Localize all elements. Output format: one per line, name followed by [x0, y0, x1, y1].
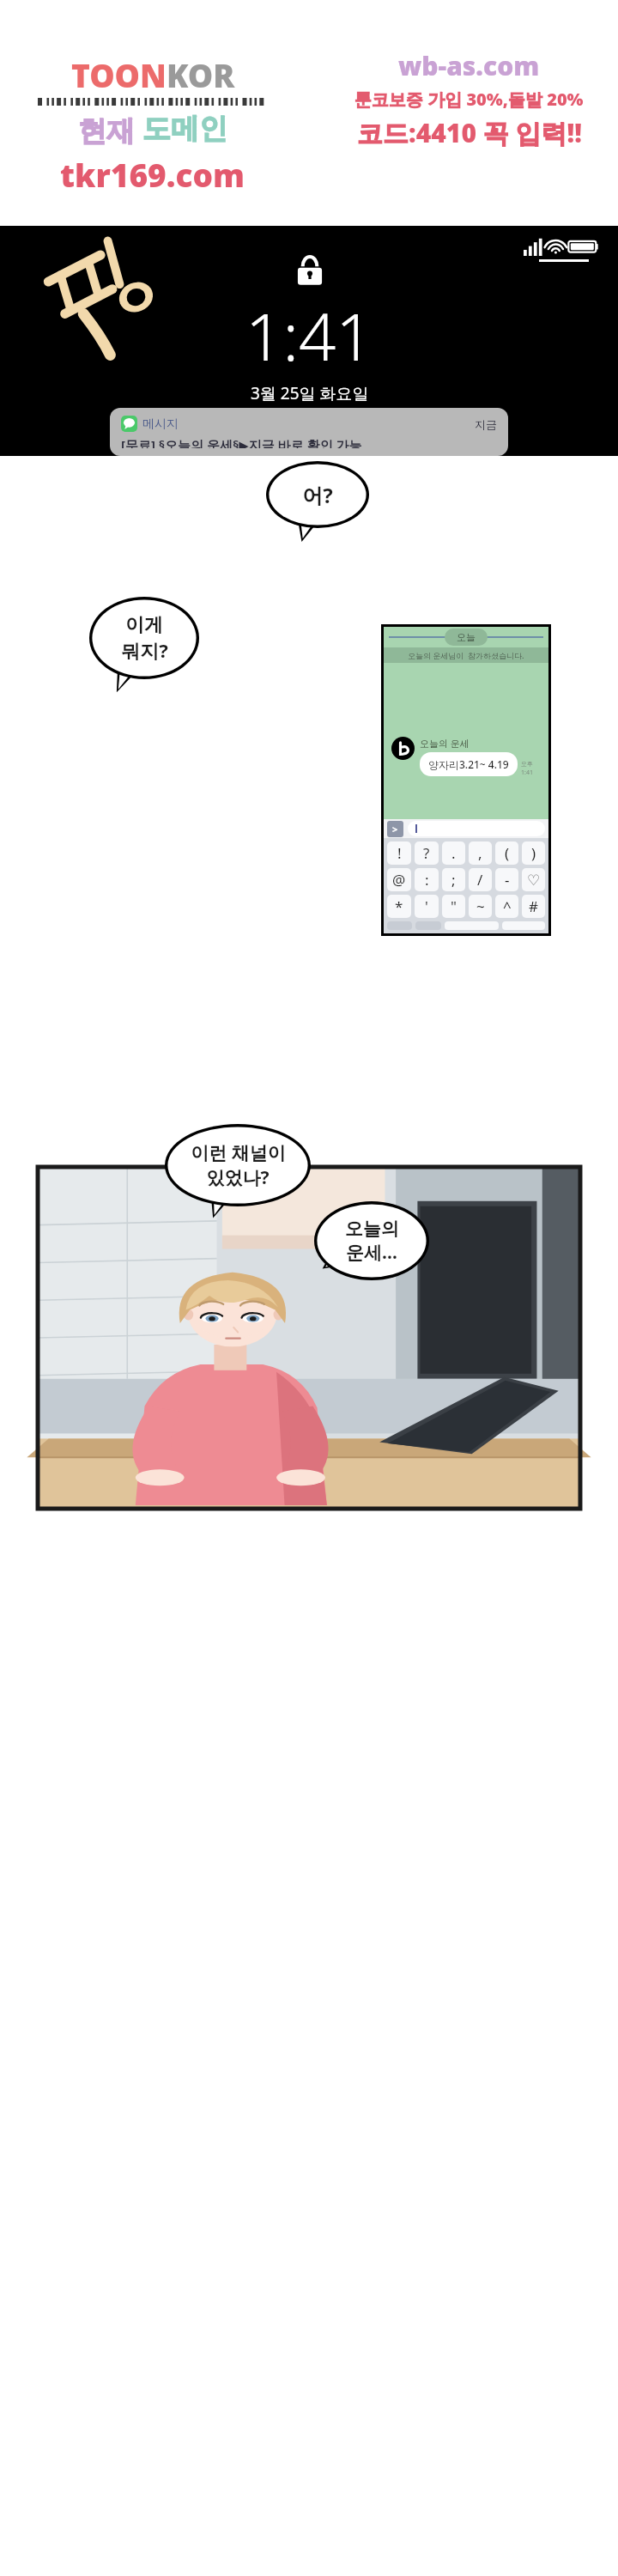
- staticText: ~: [476, 896, 485, 916]
- staticText: 툰코보증 가입 30%,돌발 20%: [354, 88, 584, 111]
- staticText: ^: [503, 896, 512, 916]
- staticText: ': [425, 896, 428, 916]
- staticText: 3월 25일 화요일: [251, 382, 369, 404]
- staticText: 양자리3.21~ 4.19: [428, 757, 509, 771]
- button[interactable]: @: [387, 868, 411, 891]
- staticText: 이게: [125, 613, 163, 637]
- staticText: 오늘의 운세: [420, 737, 470, 750]
- staticText: 뭐지?: [121, 637, 168, 663]
- staticText: 코드:4410 꼭 입력!!: [357, 115, 582, 150]
- button[interactable]: Enter: [502, 921, 545, 930]
- staticText: ?: [423, 843, 430, 863]
- button[interactable]: 메시지: [110, 408, 508, 456]
- staticText: 현재: [78, 111, 142, 149]
- staticText: wb-as.com: [398, 48, 540, 83]
- button[interactable]: ^: [495, 895, 518, 918]
- button[interactable]: ': [415, 895, 439, 918]
- staticText: ,: [478, 843, 482, 863]
- staticText: 오늘: [457, 631, 476, 643]
- staticText: TOON: [71, 53, 167, 96]
- button[interactable]: Space: [445, 921, 499, 930]
- button[interactable]: Symbols: [387, 921, 412, 930]
- button[interactable]: /: [469, 868, 492, 891]
- button[interactable]: *: [387, 895, 411, 918]
- staticText: ): [531, 843, 536, 863]
- staticText: -: [505, 870, 510, 890]
- staticText: ;: [451, 870, 456, 890]
- staticText: 있었나?: [206, 1165, 270, 1190]
- button[interactable]: ): [522, 841, 545, 865]
- staticText: 이런 채널이: [191, 1140, 286, 1165]
- button[interactable]: #: [522, 895, 545, 918]
- staticText: *: [395, 896, 403, 916]
- button[interactable]: ,: [469, 841, 492, 865]
- staticText: 1:41: [245, 291, 373, 380]
- staticText: /: [477, 870, 483, 890]
- staticText: 오늘의: [345, 1218, 399, 1240]
- staticText: ♡: [527, 872, 541, 889]
- staticText: (: [505, 843, 510, 863]
- button[interactable]: (: [495, 841, 518, 865]
- button[interactable]: Language: [415, 921, 441, 930]
- staticText: .: [451, 843, 456, 863]
- button[interactable]: ♡: [522, 868, 545, 891]
- button[interactable]: ~: [469, 895, 492, 918]
- button[interactable]: .: [442, 841, 465, 865]
- staticText: [무료] §오늘의 운세§▶지금 바로 확인 가능: [121, 436, 362, 448]
- button[interactable]: ;: [442, 868, 465, 891]
- staticText: ": [451, 896, 457, 916]
- button[interactable]: Send: [387, 821, 403, 837]
- staticText: 오후 1:41: [521, 760, 542, 776]
- staticText: tkr169.com: [60, 153, 245, 196]
- button[interactable]: :: [415, 868, 439, 891]
- button[interactable]: ": [442, 895, 465, 918]
- staticText: 운세…: [346, 1240, 397, 1265]
- staticText: 메시지: [142, 416, 179, 432]
- staticText: 오늘의 운세님이 참가하셨습니다.: [408, 650, 524, 660]
- button[interactable]: !: [387, 841, 411, 865]
- button[interactable]: -: [495, 868, 518, 891]
- staticText: 도메인: [142, 111, 227, 147]
- staticText: #: [529, 896, 538, 916]
- staticText: 지금: [475, 417, 497, 431]
- staticText: :: [425, 870, 429, 890]
- staticText: >: [392, 823, 398, 835]
- staticText: !: [397, 843, 402, 863]
- staticText: 어?: [302, 481, 333, 509]
- button[interactable]: ?: [415, 841, 439, 865]
- staticText: @: [392, 870, 406, 890]
- staticText: KOR: [167, 53, 235, 96]
